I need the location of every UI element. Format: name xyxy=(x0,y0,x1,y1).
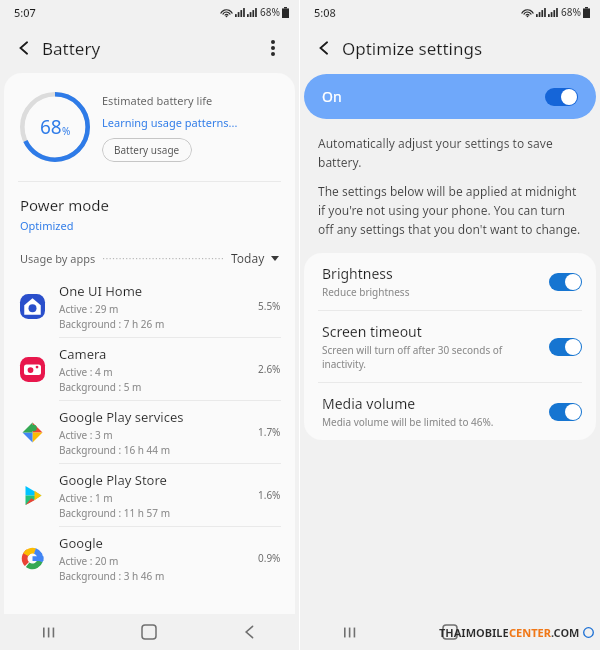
button[interactable]: Toggle xyxy=(549,273,582,291)
staticText: Estimated battery life xyxy=(102,93,213,108)
button[interactable]: Toggle xyxy=(545,88,578,106)
staticText: Active : 3 m xyxy=(59,428,113,442)
button[interactable]: Back xyxy=(199,614,299,650)
staticText: Battery xyxy=(42,37,101,60)
button[interactable]: Media volume xyxy=(304,383,596,440)
staticText: Active : 29 m xyxy=(59,302,119,316)
button[interactable]: Back xyxy=(308,32,340,64)
staticText: Active : 4 m xyxy=(59,365,113,379)
button[interactable]: Recents xyxy=(300,614,400,650)
button[interactable]: Google Play Store xyxy=(4,464,295,526)
staticText: Background : 5 m xyxy=(59,380,142,394)
staticText: 2.6% xyxy=(258,362,281,376)
staticText: 5:07 xyxy=(14,5,36,20)
staticText: Media volume xyxy=(322,394,416,413)
staticText: Brightness xyxy=(322,264,393,283)
staticText: Media volume will be limited to 46%. xyxy=(322,415,494,429)
staticText: Battery usage xyxy=(114,143,180,157)
button[interactable]: Toggle xyxy=(549,338,582,356)
button[interactable]: Today xyxy=(231,250,279,266)
staticText: % xyxy=(62,124,71,138)
staticText: Usage by apps xyxy=(20,251,96,266)
button[interactable]: Home xyxy=(400,614,500,650)
staticText: Background : 16 h 44 m xyxy=(59,443,170,457)
button[interactable]: Google xyxy=(4,527,295,589)
staticText: Camera xyxy=(59,345,107,363)
staticText: Today xyxy=(231,250,265,266)
staticText: Screen timeout xyxy=(322,322,422,341)
button[interactable]: Screen timeout xyxy=(304,311,596,382)
staticText: Active : 20 m xyxy=(59,554,119,568)
staticText: Power mode xyxy=(20,195,109,215)
staticText: Optimized xyxy=(20,218,74,233)
staticText: The settings below will be applied at mi… xyxy=(318,183,582,237)
staticText: Optimize settings xyxy=(342,37,483,60)
staticText: Screen will turn off after 30 seconds of… xyxy=(322,343,533,371)
staticText: Automatically adjust your settings to sa… xyxy=(318,135,582,170)
staticText: One UI Home xyxy=(59,282,143,300)
button[interactable]: On xyxy=(304,74,596,119)
staticText: On xyxy=(322,87,545,106)
staticText: Background : 7 h 26 m xyxy=(59,317,165,331)
button[interactable]: Recents xyxy=(0,614,99,650)
staticText: Active : 1 m xyxy=(59,491,113,505)
button[interactable]: Back xyxy=(8,32,40,64)
button[interactable]: Learning usage patterns... xyxy=(102,115,238,130)
staticText: 5:08 xyxy=(314,5,336,20)
staticText: CENTER xyxy=(509,625,551,640)
staticText: .COM xyxy=(551,625,580,640)
staticText: 68 xyxy=(40,114,62,140)
staticText: 68% xyxy=(561,5,581,19)
button[interactable]: One UI Home xyxy=(4,275,295,337)
button[interactable]: More options xyxy=(257,32,289,64)
button[interactable]: Power mode xyxy=(4,195,295,233)
staticText: Google Play services xyxy=(59,408,184,426)
button[interactable]: Toggle xyxy=(549,403,582,421)
staticText: 0.9% xyxy=(258,551,281,565)
button[interactable]: Home xyxy=(99,614,199,650)
button[interactable]: Google Play services xyxy=(4,401,295,463)
staticText: 1.6% xyxy=(258,488,281,502)
staticText: THAIMOBILE xyxy=(439,625,509,640)
button[interactable]: Camera xyxy=(4,338,295,400)
staticText: Background : 11 h 57 m xyxy=(59,506,170,520)
button[interactable]: Back xyxy=(500,614,600,650)
staticText: 5.5% xyxy=(258,299,281,313)
staticText: Background : 3 h 46 m xyxy=(59,569,165,583)
staticText: Google Play Store xyxy=(59,471,167,489)
staticText: 68% xyxy=(260,5,280,19)
button[interactable]: Brightness xyxy=(304,253,596,310)
staticText: 1.7% xyxy=(258,425,281,439)
staticText: Reduce brightness xyxy=(322,285,410,299)
staticText: Google xyxy=(59,534,103,552)
button[interactable]: Battery usage xyxy=(102,138,192,162)
